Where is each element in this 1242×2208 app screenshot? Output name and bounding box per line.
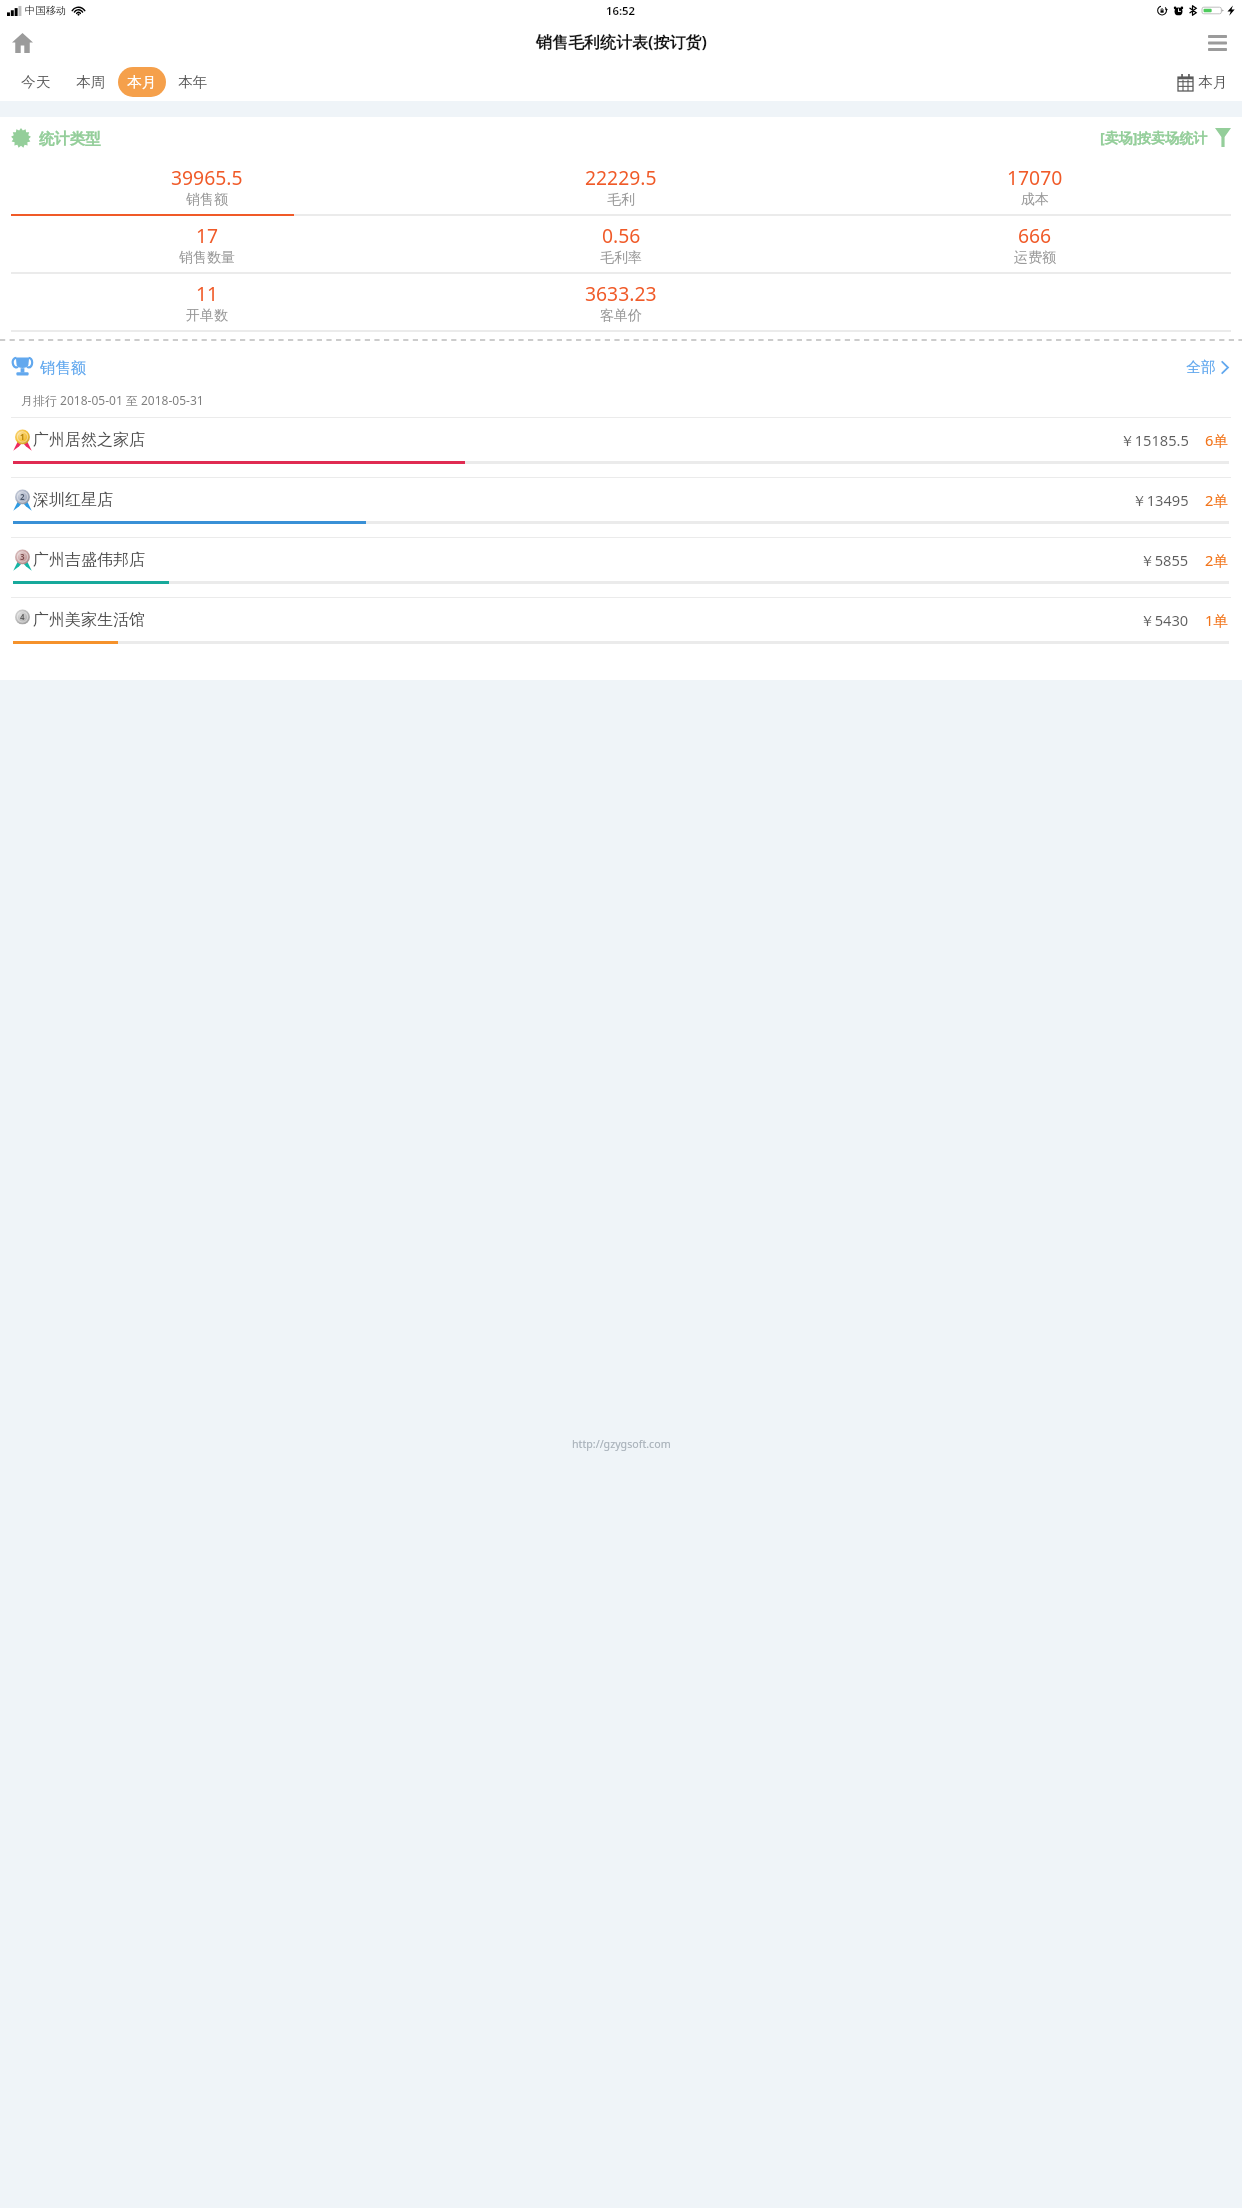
- staticText: 深圳红星店: [33, 490, 113, 510]
- button[interactable]: 统计类型: [11, 125, 101, 151]
- staticText: ￥15185.5: [1120, 430, 1189, 450]
- staticText: 本年: [178, 73, 208, 91]
- staticText: 广州吉盛伟邦店: [33, 550, 145, 570]
- staticText: 本周: [76, 73, 106, 91]
- button[interactable]: 1: [0, 418, 1242, 478]
- staticText: 毛利率: [600, 249, 642, 267]
- button[interactable]: 3: [0, 538, 1242, 598]
- staticText: 22229.5: [585, 164, 657, 190]
- button[interactable]: 销售额: [13, 354, 86, 380]
- staticText: ￥5855: [1140, 550, 1189, 570]
- button[interactable]: Home: [7, 27, 38, 58]
- staticText: 17070: [1007, 164, 1063, 190]
- button[interactable]: 2: [0, 478, 1242, 538]
- button[interactable]: 17070: [828, 158, 1242, 214]
- staticText: 2单: [1205, 490, 1229, 510]
- staticText: ￥5430: [1140, 610, 1189, 630]
- staticText: 中国移动: [25, 4, 67, 17]
- staticText: 成本: [1021, 191, 1049, 209]
- button[interactable]: 本月: [118, 67, 166, 97]
- button[interactable]: 本年: [169, 67, 217, 97]
- button[interactable]: 全部: [1186, 354, 1229, 380]
- staticText: 本月: [1198, 73, 1228, 91]
- staticText: 广州美家生活馆: [33, 610, 145, 630]
- button[interactable]: 今天: [12, 67, 60, 97]
- staticText: 2单: [1205, 550, 1229, 570]
- staticText: 广州居然之家店: [33, 430, 145, 450]
- button[interactable]: 17: [0, 216, 414, 272]
- button[interactable]: 4: [0, 598, 1242, 657]
- staticText: ￥13495: [1132, 490, 1189, 510]
- button[interactable]: 0.56: [414, 216, 828, 272]
- button[interactable]: 本月: [1175, 70, 1231, 94]
- staticText: 开单数: [186, 307, 228, 325]
- staticText: 客单价: [600, 307, 642, 325]
- staticText: 销售额: [40, 358, 86, 377]
- staticText: 本月: [127, 73, 157, 91]
- staticText: 销售额: [186, 191, 228, 209]
- staticText: 17: [196, 222, 219, 248]
- button[interactable]: 3633.23: [414, 274, 828, 330]
- staticText: 统计类型: [39, 129, 101, 148]
- staticText: 销售数量: [179, 249, 235, 267]
- staticText: 11: [196, 280, 219, 306]
- staticText: http://gzygsoft.com: [572, 1437, 671, 1452]
- staticText: 0.56: [602, 222, 641, 248]
- staticText: 39965.5: [171, 164, 243, 190]
- button[interactable]: 22229.5: [414, 158, 828, 214]
- button[interactable]: 39965.5: [0, 158, 414, 214]
- staticText: 16:52: [606, 3, 636, 18]
- staticText: [卖场]按卖场统计: [1100, 128, 1208, 147]
- staticText: 3633.23: [585, 280, 657, 306]
- staticText: 666: [1018, 222, 1052, 248]
- button[interactable]: 11: [0, 274, 414, 330]
- button[interactable]: [卖场]按卖场统计: [1100, 125, 1231, 150]
- button[interactable]: Menu: [1202, 27, 1233, 58]
- staticText: 今天: [21, 73, 51, 91]
- staticText: 6单: [1205, 430, 1229, 450]
- staticText: 月排行 2018-05-01 至 2018-05-31: [21, 392, 204, 408]
- button[interactable]: 666: [828, 216, 1242, 272]
- staticText: 运费额: [1014, 249, 1056, 267]
- button[interactable]: 本周: [67, 67, 115, 97]
- staticText: 4: [20, 611, 25, 622]
- staticText: 2: [20, 491, 25, 502]
- staticText: 毛利: [607, 191, 635, 209]
- staticText: 1单: [1205, 610, 1229, 630]
- staticText: 销售毛利统计表(按订货): [536, 31, 707, 53]
- staticText: 3: [20, 551, 25, 562]
- staticText: 全部: [1186, 358, 1216, 376]
- staticText: 1: [20, 431, 25, 442]
